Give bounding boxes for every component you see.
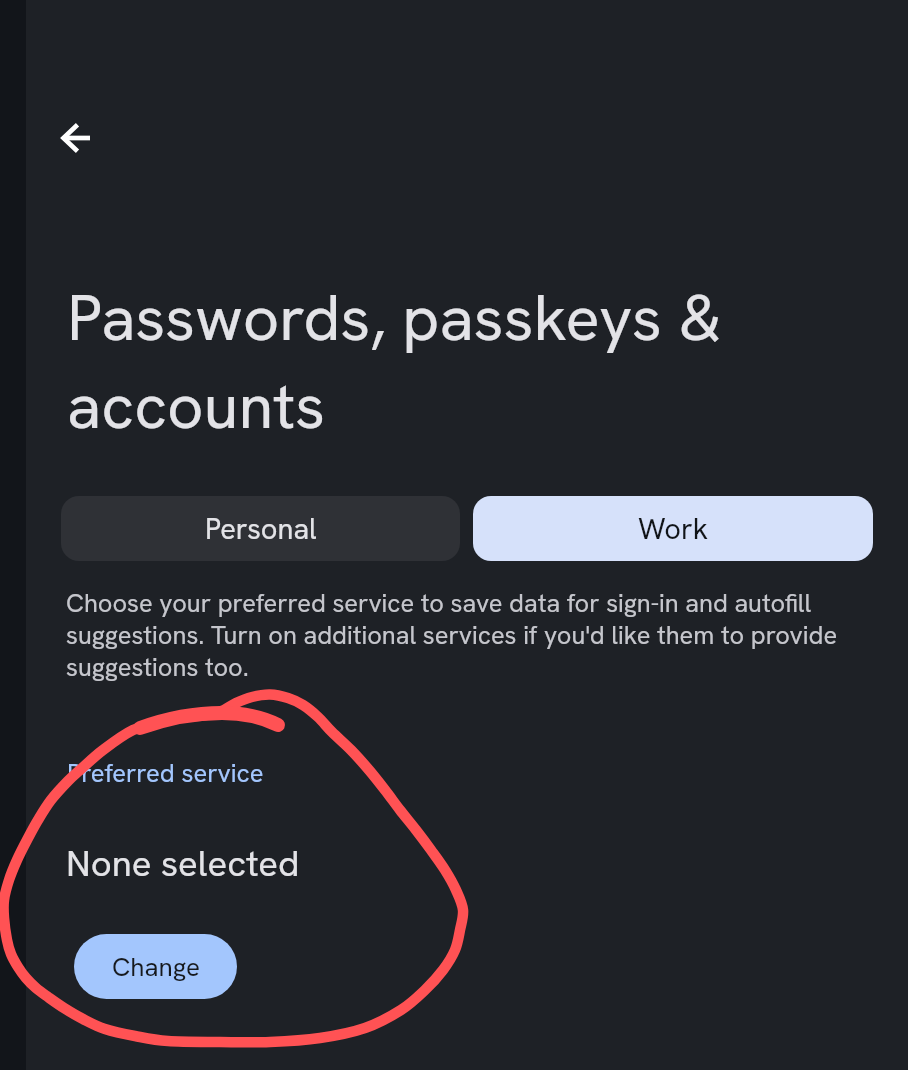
button[interactable]: Back xyxy=(47,110,103,166)
staticText: None selected xyxy=(66,839,300,887)
staticText: Preferred service xyxy=(67,756,264,789)
button[interactable]: Personal xyxy=(61,496,460,561)
staticText: Change xyxy=(112,950,200,984)
staticText: Passwords, passkeys & accounts xyxy=(67,273,807,449)
staticText: Work xyxy=(638,510,709,548)
button[interactable]: Work xyxy=(473,496,873,561)
staticText: Choose your preferred service to save da… xyxy=(66,588,856,684)
staticText: Personal xyxy=(205,510,317,548)
button[interactable]: Change xyxy=(74,934,237,999)
